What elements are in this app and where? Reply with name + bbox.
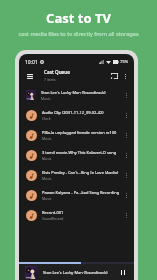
button[interactable]: Item options bbox=[122, 191, 131, 200]
staticText: Music bbox=[42, 196, 52, 201]
button[interactable]: Item options bbox=[122, 211, 131, 220]
staticText: 75% bbox=[120, 59, 129, 65]
button[interactable]: Item options bbox=[122, 151, 131, 160]
staticText: 7 items bbox=[44, 77, 56, 82]
staticText: Elvis Presley - Can't...Ring In Love (Au… bbox=[42, 170, 119, 175]
staticText: Record-001 bbox=[42, 210, 64, 215]
staticText: Music bbox=[42, 156, 52, 161]
staticText: Cast to TV bbox=[46, 9, 111, 27]
button[interactable]: Cast bbox=[108, 70, 120, 82]
button[interactable]: Item options bbox=[122, 171, 131, 180]
staticText: Pilla-la unplugged female version rx100 bbox=[42, 130, 117, 135]
button[interactable]: Item options bbox=[122, 131, 131, 140]
button[interactable]: Pilla-la unplugged female version rx100 bbox=[19, 125, 134, 145]
staticText: Audio Clip (2031-11-12_09-02-42) bbox=[42, 110, 104, 115]
button[interactable]: More options bbox=[120, 71, 130, 81]
button[interactable]: Menu bbox=[24, 70, 36, 82]
button[interactable]: Audio Clip (2031-11-12_09-02-42) bbox=[19, 105, 134, 125]
staticText: Pawan Kalyana - Pa...kad Song Recording bbox=[42, 190, 120, 195]
staticText: cast media files to tv directly from all… bbox=[18, 30, 139, 38]
button[interactable]: 3 tamil movie-Why This Kolaveri-D song bbox=[19, 145, 134, 165]
button[interactable]: Pawan Kalyana - Pa...kad Song Recording bbox=[19, 185, 134, 205]
button[interactable]: Record-001 bbox=[19, 205, 134, 225]
staticText: Music bbox=[42, 136, 52, 141]
staticText: 10:01 bbox=[25, 59, 38, 66]
button[interactable]: Item options bbox=[122, 111, 131, 120]
staticText: SoundRecord bbox=[42, 216, 64, 221]
staticText: Stan Lee's Lucky Man (Soundtrack) bbox=[43, 270, 118, 275]
staticText: Music bbox=[42, 176, 52, 181]
staticText: Cast Queue bbox=[44, 69, 70, 75]
staticText: Clock bbox=[42, 116, 51, 121]
button[interactable]: Stan Lee's Lucky Man (Soundtrack) bbox=[19, 264, 134, 280]
staticText: Stan Lee's Lucky Man (Soundtrack) bbox=[41, 90, 106, 95]
staticText: Music bbox=[41, 96, 51, 101]
button[interactable]: Stan Lee's Lucky Man (Soundtrack) bbox=[19, 85, 134, 105]
button[interactable]: Pause bbox=[118, 267, 128, 277]
staticText: 3 tamil movie-Why This Kolaveri-D song bbox=[42, 150, 117, 155]
button[interactable]: Item options bbox=[122, 91, 131, 100]
button[interactable]: Elvis Presley - Can't...Ring In Love (Au… bbox=[19, 165, 134, 185]
